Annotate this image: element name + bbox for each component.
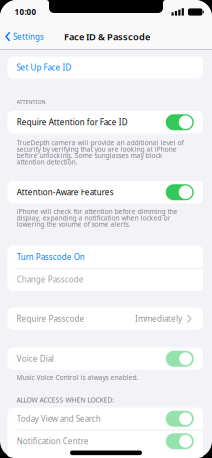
staticText: Require Passcode [16, 313, 84, 324]
staticText: Set Up Face ID [16, 62, 71, 73]
button[interactable]: Attention-Aware Features [7, 181, 203, 203]
staticText: attention detection. [16, 157, 77, 166]
button[interactable]: Change Passcode [7, 268, 203, 291]
staticText: lowering the volume of some alerts. [16, 220, 130, 229]
staticText: iPhone will check for attention before d… [16, 207, 177, 216]
button[interactable]: Settings [5, 29, 49, 45]
staticText: TrueDepth camera will provide an additio… [16, 138, 183, 147]
staticText: Today View and Search [17, 413, 101, 424]
staticText: display, expanding a notification when l… [16, 213, 170, 222]
staticText: Turn Passcode On [17, 252, 85, 262]
staticText: Settings [13, 31, 44, 42]
button[interactable]: Require Attention for Face ID [7, 111, 203, 133]
button[interactable]: Today View and Search [7, 407, 203, 430]
staticText: 10:00 [14, 6, 36, 17]
staticText: Music Voice Control is always enabled. [16, 373, 138, 382]
staticText: Attention-Aware Features [17, 187, 114, 197]
button[interactable]: Set Up Face ID [7, 56, 203, 78]
staticText: Require Attention for Face ID [17, 117, 128, 127]
button[interactable]: Voice Dial [7, 347, 203, 370]
staticText: before unlocking. Some sunglasses may bl… [16, 151, 162, 160]
staticText: Voice Dial [17, 353, 54, 364]
button[interactable]: Require Passcode [7, 307, 203, 330]
button[interactable]: Notification Centre [7, 430, 203, 452]
staticText: ATTENTION [16, 98, 45, 106]
button[interactable]: Turn Passcode On [7, 246, 203, 268]
staticText: Notification Centre [17, 436, 89, 446]
staticText: security by verifying that you are looki… [16, 145, 176, 154]
staticText: Immediately [135, 313, 182, 324]
staticText: Face ID & Passcode [64, 30, 150, 43]
staticText: Change Passcode [17, 274, 84, 285]
staticText: ALLOW ACCESS WHEN LOCKED: [16, 396, 114, 404]
